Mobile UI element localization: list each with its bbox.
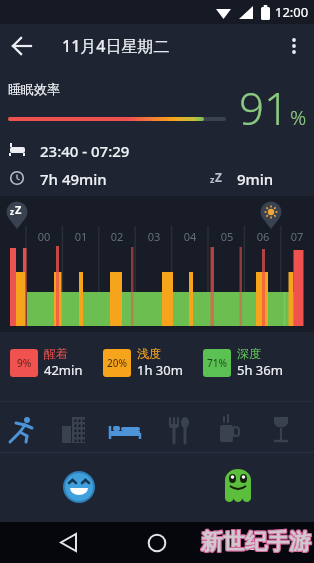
staticText: 7h 49min — [40, 169, 107, 189]
staticText: 91 — [239, 78, 290, 138]
staticText: % — [290, 104, 307, 131]
staticText: 1h 30m — [137, 361, 183, 379]
staticText: 新世纪手游 — [202, 527, 312, 555]
staticText: 新世纪手游 — [200, 529, 310, 557]
staticText: z — [210, 173, 215, 185]
staticText: 新世纪手游 — [201, 528, 311, 556]
staticText: z — [10, 206, 14, 217]
staticText: 醒着 — [44, 346, 68, 361]
staticText: 07 — [285, 229, 309, 244]
button[interactable] — [224, 468, 252, 500]
button[interactable] — [62, 470, 96, 504]
staticText: 23:40 - 07:29 — [40, 141, 130, 161]
staticText: 04 — [178, 229, 202, 244]
staticText: 01 — [69, 229, 93, 244]
staticText: 新世纪手游 — [200, 528, 310, 556]
staticText: 睡眠效率 — [8, 81, 60, 97]
button[interactable]: 71% — [203, 346, 283, 379]
staticText: 71% — [207, 356, 227, 370]
button[interactable] — [137, 522, 177, 563]
staticText: Z — [215, 169, 222, 185]
button[interactable] — [274, 26, 314, 66]
staticText: 浅度 — [137, 346, 161, 361]
button[interactable] — [48, 522, 88, 563]
staticText: 新世纪手游 — [201, 527, 311, 555]
button[interactable]: 9% — [10, 346, 83, 379]
staticText: 深度 — [237, 346, 261, 361]
staticText: 42min — [44, 361, 83, 379]
staticText: 5h 36m — [237, 361, 283, 379]
button[interactable]: 20% — [103, 346, 183, 379]
button[interactable] — [0, 24, 44, 68]
staticText: 新世纪手游 — [201, 529, 311, 557]
staticText: 20% — [107, 356, 127, 370]
staticText: 11月4日星期二 — [62, 35, 170, 57]
staticText: 9% — [17, 356, 32, 370]
button[interactable] — [226, 522, 266, 563]
staticText: 9min — [237, 169, 274, 189]
staticText: 03 — [142, 229, 166, 244]
staticText: 新世纪手游 — [202, 529, 312, 557]
staticText: Z — [15, 202, 22, 217]
staticText: 12:00 — [275, 3, 309, 21]
staticText: 新世纪手游 — [202, 528, 312, 556]
staticText: 06 — [251, 229, 275, 244]
staticText: 00 — [32, 229, 56, 244]
staticText: 02 — [105, 229, 129, 244]
staticText: 05 — [215, 229, 239, 244]
staticText: 新世纪手游 — [200, 527, 310, 555]
